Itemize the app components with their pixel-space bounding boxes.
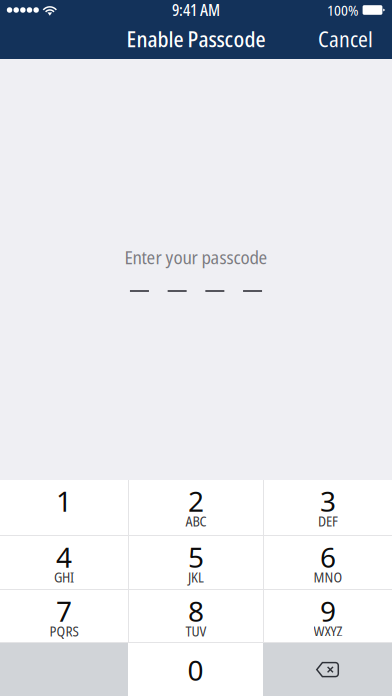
staticText: PQRS bbox=[49, 621, 78, 641]
staticText: MNO bbox=[313, 567, 342, 587]
staticText: 4 bbox=[56, 538, 72, 576]
button[interactable]: 9 bbox=[264, 590, 392, 642]
staticText: 9 bbox=[320, 592, 336, 630]
staticText: JKL bbox=[188, 567, 204, 587]
staticText: 6 bbox=[320, 538, 336, 576]
staticText: WXYZ bbox=[313, 621, 342, 641]
staticText: Enable Passcode bbox=[126, 24, 265, 54]
button[interactable]: 8 bbox=[129, 590, 263, 642]
button[interactable]: 5 bbox=[129, 536, 263, 589]
staticText: ABC bbox=[185, 511, 206, 531]
button[interactable]: 4 bbox=[0, 536, 128, 589]
staticText: 3 bbox=[320, 482, 336, 520]
button[interactable]: 3 bbox=[264, 480, 392, 535]
staticText: GHI bbox=[54, 567, 74, 587]
button[interactable]: 0 bbox=[128, 643, 263, 696]
staticText: 9:41 AM bbox=[172, 0, 220, 20]
button[interactable]: 1 bbox=[0, 480, 128, 535]
button[interactable]: Cancel bbox=[308, 20, 383, 58]
staticText: 8 bbox=[188, 592, 204, 630]
button[interactable]: 2 bbox=[129, 480, 263, 535]
staticText: Cancel bbox=[318, 24, 373, 54]
button[interactable]: 7 bbox=[0, 590, 128, 642]
staticText: Enter your passcode bbox=[124, 244, 267, 270]
staticText: 100% bbox=[327, 0, 358, 20]
staticText: 1 bbox=[56, 482, 72, 520]
button[interactable]: 6 bbox=[264, 536, 392, 589]
staticText: DEF bbox=[318, 511, 338, 531]
staticText: 5 bbox=[188, 538, 204, 576]
staticText: 2 bbox=[188, 482, 204, 520]
staticText: TUV bbox=[185, 621, 206, 641]
button[interactable]: Delete bbox=[263, 643, 392, 696]
staticText: 0 bbox=[187, 651, 203, 689]
staticText: 7 bbox=[56, 592, 72, 630]
